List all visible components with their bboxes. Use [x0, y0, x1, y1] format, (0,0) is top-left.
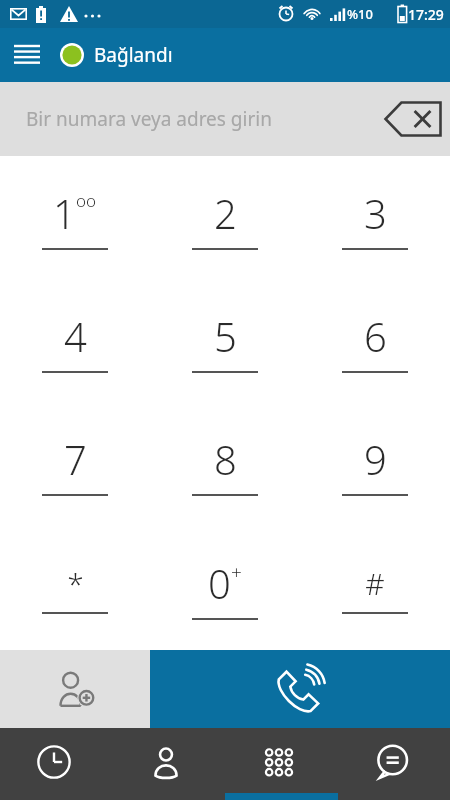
staticText: %10	[347, 5, 373, 23]
button[interactable]: Add contact	[0, 650, 150, 728]
staticText: 2	[214, 186, 237, 240]
button[interactable]: Contacts	[112, 728, 224, 800]
staticText: 5	[214, 309, 237, 363]
button[interactable]: Bağlandı	[54, 28, 189, 82]
staticText: Bir numara veya adres girin	[26, 106, 272, 132]
button[interactable]: 8	[150, 402, 300, 526]
button[interactable]: *	[0, 526, 150, 650]
button[interactable]: Backspace	[376, 82, 450, 156]
button[interactable]: Call	[150, 650, 450, 728]
staticText: #	[365, 563, 385, 604]
staticText: 1	[53, 186, 76, 240]
staticText: 17:29	[408, 5, 444, 24]
button[interactable]: Recents	[0, 728, 112, 800]
button[interactable]: 6	[300, 279, 450, 402]
button[interactable]: Keypad	[224, 728, 337, 800]
staticText: 6	[364, 309, 387, 363]
button[interactable]: 3	[300, 156, 450, 279]
button[interactable]: 1	[0, 156, 150, 279]
staticText: oo	[76, 189, 97, 212]
button[interactable]: #	[300, 526, 450, 650]
staticText: Bağlandı	[94, 42, 173, 68]
button[interactable]: 5	[150, 279, 300, 402]
staticText: 0	[208, 556, 231, 610]
staticText: 3	[364, 186, 387, 240]
staticText: *	[67, 563, 84, 604]
button[interactable]: Menu	[0, 28, 54, 82]
staticText: 7	[64, 432, 87, 486]
staticText: 8	[214, 432, 237, 486]
button[interactable]: 7	[0, 402, 150, 526]
button[interactable]: 9	[300, 402, 450, 526]
button[interactable]: 0	[150, 526, 300, 650]
button[interactable]: 2	[150, 156, 300, 279]
staticText: 9	[364, 432, 387, 486]
button[interactable]: 4	[0, 279, 150, 402]
staticText: 4	[64, 309, 87, 363]
staticText: +	[231, 559, 242, 585]
button[interactable]: Messages	[337, 728, 450, 800]
